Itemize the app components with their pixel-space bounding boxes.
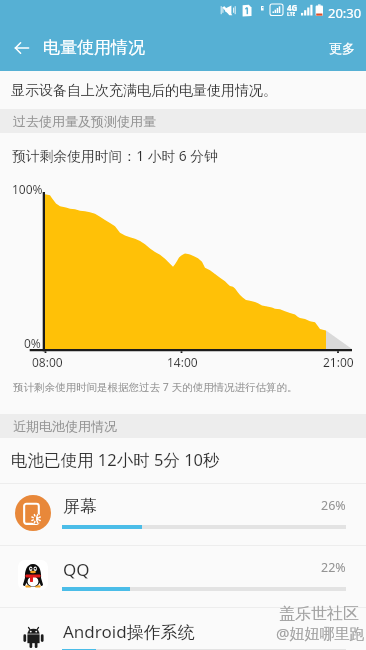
button[interactable]: QQ [0,545,366,607]
staticText: 20:30 [328,4,362,22]
staticText: 4G [287,2,298,13]
staticText: 显示设备自上次充满电后的电量使用情况。 [11,82,277,100]
button[interactable]: Back [4,30,40,66]
staticText: 电池已使用 12小时 5分 10秒 [11,448,220,471]
button[interactable]: 更多 [318,28,366,68]
staticText: 21:00 [323,354,354,370]
staticText: Android操作系统 [63,620,195,643]
staticText: QQ [63,558,90,581]
staticText: 盖乐世社区 [279,604,359,624]
staticText: 08:00 [32,354,63,370]
staticText: 更多 [329,40,355,56]
staticText: 电量使用情况 [43,37,145,58]
staticText: 26% [321,497,346,514]
staticText: 近期电池使用情况 [13,418,117,434]
button[interactable]: 屏幕 [0,483,366,545]
staticText: 屏幕 [63,496,97,517]
staticText: 22% [321,559,346,576]
staticText: 过去使用量及预测使用量 [13,113,156,129]
staticText: 100% [12,181,43,197]
staticText: 0% [24,335,41,351]
staticText: 14:00 [167,354,198,370]
staticText: 预计剩余使用时间是根据您过去 7 天的使用情况进行估算的。 [13,380,298,394]
button[interactable]: Android操作系统 [0,607,366,650]
staticText: LTE [287,11,296,18]
staticText: @妞妞哪里跑 [276,623,365,643]
staticText: 预计剩余使用时间：1 小时 6 分钟 [12,146,218,165]
